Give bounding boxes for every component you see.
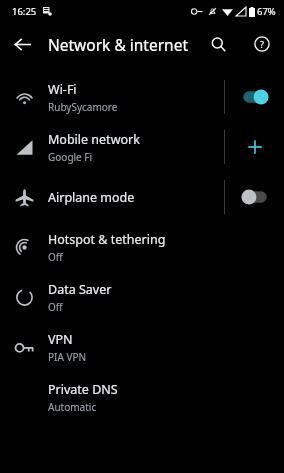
staticText: 67% bbox=[257, 5, 276, 18]
button[interactable]: Wi-Fi control bbox=[225, 72, 284, 122]
button[interactable]: Airplane mode bbox=[0, 172, 284, 222]
staticText: Off bbox=[48, 300, 63, 314]
staticText: Data Saver bbox=[48, 281, 112, 298]
staticText: 16:25 bbox=[12, 5, 37, 18]
button[interactable]: Data Saver bbox=[0, 272, 284, 322]
button[interactable]: VPN bbox=[0, 322, 284, 372]
staticText: Off bbox=[48, 250, 63, 264]
button[interactable]: Hotspot & tethering bbox=[0, 222, 284, 272]
staticText: RubySycamore bbox=[48, 100, 118, 114]
staticText: Airplane mode bbox=[48, 189, 135, 206]
button[interactable]: Back bbox=[0, 22, 44, 66]
staticText: Automatic bbox=[48, 400, 97, 414]
other: Add network bbox=[245, 137, 265, 157]
staticText: Mobile network bbox=[48, 131, 140, 148]
button[interactable]: Wi-Fi bbox=[0, 72, 284, 122]
staticText: Network & internet bbox=[48, 34, 188, 55]
button[interactable]: Airplane mode control bbox=[225, 172, 284, 222]
staticText: VPN bbox=[48, 331, 73, 348]
button[interactable]: Mobile network control bbox=[225, 122, 284, 172]
button[interactable]: Mobile network bbox=[0, 122, 284, 172]
staticText: Private DNS bbox=[48, 381, 118, 398]
staticText: PIA VPN bbox=[48, 350, 87, 364]
button[interactable]: Help bbox=[240, 22, 284, 66]
staticText: Wi-Fi bbox=[48, 81, 77, 98]
button[interactable]: Network & internet bbox=[44, 22, 196, 66]
staticText: Hotspot & tethering bbox=[48, 231, 166, 248]
staticText: ? bbox=[260, 38, 264, 50]
staticText: Google Fi bbox=[48, 150, 93, 164]
button[interactable]: Search bbox=[196, 22, 240, 66]
button[interactable]: Private DNS bbox=[0, 372, 284, 422]
